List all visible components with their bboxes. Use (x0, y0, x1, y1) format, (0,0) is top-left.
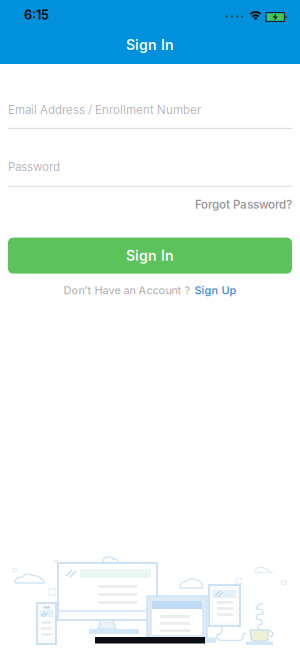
staticText: Email Address / Enrollment Number (8, 103, 201, 117)
button[interactable]: Password (8, 160, 292, 187)
staticText: Sign Up (194, 284, 236, 297)
button[interactable]: Forgot Password? (195, 198, 292, 212)
button[interactable]: Sign Up (194, 284, 236, 297)
button[interactable]: Sign In (8, 238, 292, 274)
button[interactable]: Email Address / Enrollment Number (8, 103, 292, 129)
staticText: Sign In (126, 247, 174, 264)
staticText: Password (8, 160, 60, 174)
staticText: Don’t Have an Account ? (63, 284, 190, 297)
staticText: 6:15 (24, 7, 49, 23)
staticText: Sign In (126, 36, 174, 53)
staticText: Forgot Password? (195, 198, 292, 212)
